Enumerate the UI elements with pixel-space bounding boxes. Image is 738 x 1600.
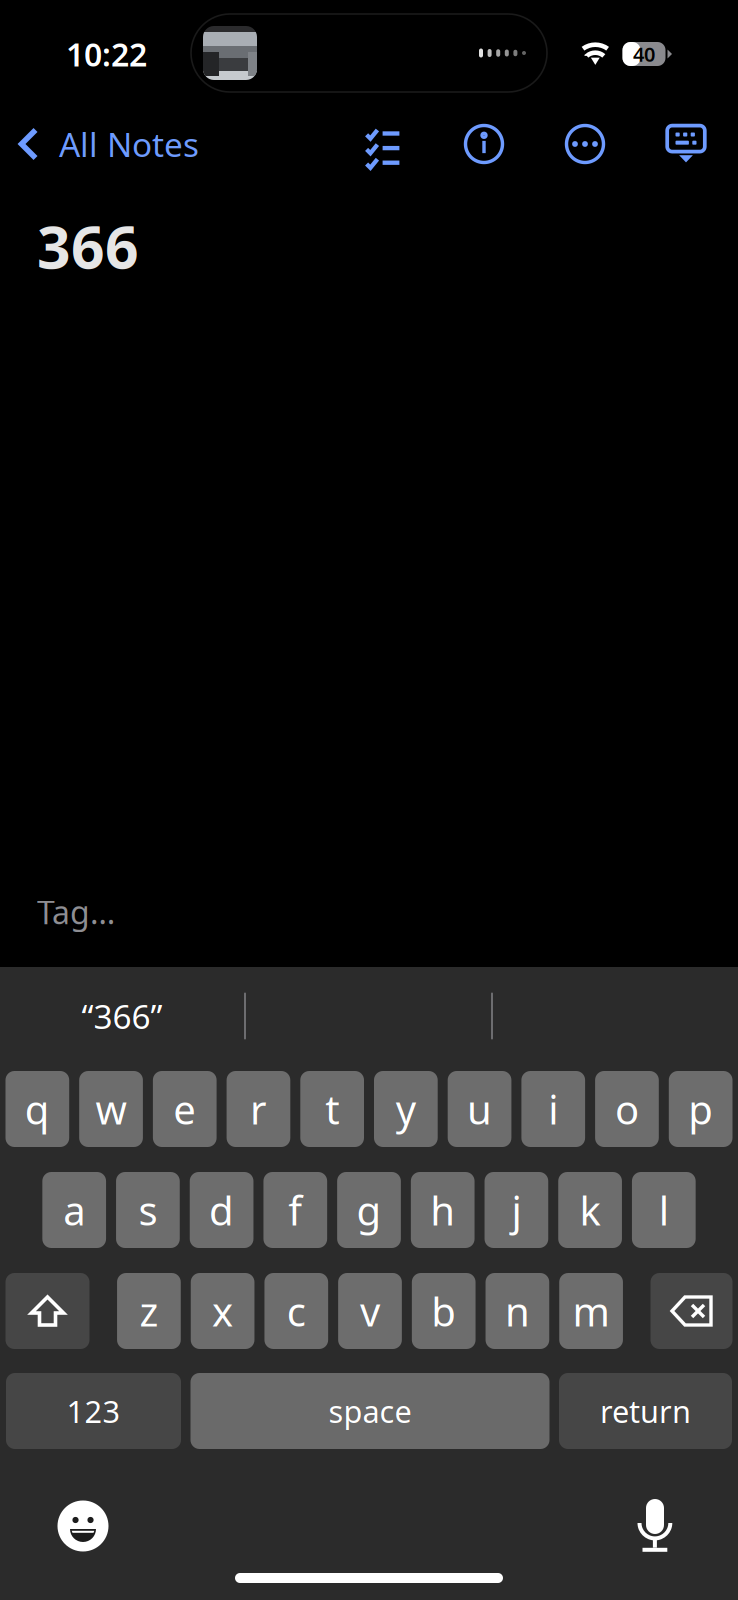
staticText: b <box>431 1284 456 1337</box>
staticText: x <box>212 1284 233 1337</box>
button[interactable]: s <box>116 1172 180 1248</box>
staticText: Tag… <box>37 890 115 933</box>
staticText: 366 <box>37 207 139 285</box>
staticText: t <box>325 1082 339 1135</box>
button[interactable]: b <box>412 1273 476 1349</box>
button[interactable]: w <box>79 1071 143 1147</box>
button[interactable]: 123 <box>6 1373 181 1449</box>
button[interactable]: a <box>42 1172 106 1248</box>
button[interactable]: h <box>411 1172 475 1248</box>
staticText: w <box>96 1082 127 1135</box>
staticText: m <box>573 1284 610 1337</box>
button[interactable]: More options <box>554 113 616 175</box>
button[interactable]: k <box>558 1172 622 1248</box>
button[interactable]: z <box>117 1273 181 1349</box>
staticText: z <box>139 1284 158 1337</box>
staticText: p <box>688 1082 713 1135</box>
staticText: j <box>511 1183 521 1236</box>
staticText: d <box>209 1183 234 1236</box>
staticText: l <box>659 1183 669 1236</box>
button[interactable]: n <box>486 1273 549 1349</box>
button[interactable]: Emoji keyboard <box>54 1497 112 1555</box>
staticText: e <box>173 1082 196 1135</box>
button[interactable]: m <box>559 1273 623 1349</box>
button[interactable]: Tag… <box>0 882 139 941</box>
button[interactable]: t <box>300 1071 364 1147</box>
staticText: c <box>287 1284 306 1337</box>
staticText: a <box>63 1183 85 1236</box>
staticText: u <box>467 1082 492 1135</box>
button[interactable]: Dictate <box>626 1497 684 1555</box>
button[interactable]: y <box>374 1071 438 1147</box>
staticText: k <box>580 1183 601 1236</box>
button[interactable]: l <box>632 1172 696 1248</box>
button[interactable]: f <box>263 1172 327 1248</box>
button[interactable]: c <box>264 1273 328 1349</box>
button[interactable]: Checklist <box>352 113 414 175</box>
button[interactable]: “366” <box>0 987 244 1045</box>
staticText: f <box>288 1183 302 1236</box>
button[interactable]: j <box>485 1172 548 1248</box>
staticText: y <box>396 1082 416 1135</box>
button[interactable]: g <box>337 1172 401 1248</box>
button[interactable]: r <box>227 1071 290 1147</box>
button[interactable]: v <box>338 1273 402 1349</box>
staticText: r <box>250 1082 267 1135</box>
staticText: All Notes <box>59 122 199 166</box>
button[interactable]: i <box>521 1071 585 1147</box>
button[interactable]: o <box>595 1071 659 1147</box>
button[interactable]: space <box>190 1373 549 1449</box>
button[interactable]: e <box>153 1071 217 1147</box>
button[interactable]: u <box>448 1071 511 1147</box>
staticText: space <box>328 1391 411 1431</box>
staticText: o <box>615 1082 639 1135</box>
button[interactable]: q <box>5 1071 69 1147</box>
staticText: i <box>548 1082 558 1135</box>
staticText: s <box>138 1183 157 1236</box>
staticText: 40 <box>633 41 655 67</box>
staticText: n <box>505 1284 530 1337</box>
button[interactable]: Note information <box>453 113 515 175</box>
staticText: 10:22 <box>66 33 147 75</box>
staticText: v <box>360 1284 380 1337</box>
button[interactable]: p <box>669 1071 732 1147</box>
button[interactable]: All Notes <box>0 113 211 175</box>
button[interactable]: return <box>559 1373 732 1449</box>
button[interactable]: Hide keyboard <box>655 113 717 175</box>
staticText: h <box>430 1183 455 1236</box>
staticText: 123 <box>66 1391 120 1431</box>
button[interactable]: Delete <box>650 1273 732 1349</box>
button[interactable]: d <box>190 1172 253 1248</box>
button[interactable]: x <box>191 1273 254 1349</box>
staticText: return <box>600 1391 691 1431</box>
button[interactable]: Shift <box>5 1273 89 1349</box>
staticText: “366” <box>81 994 162 1038</box>
staticText: q <box>25 1082 50 1135</box>
staticText: g <box>356 1183 381 1236</box>
